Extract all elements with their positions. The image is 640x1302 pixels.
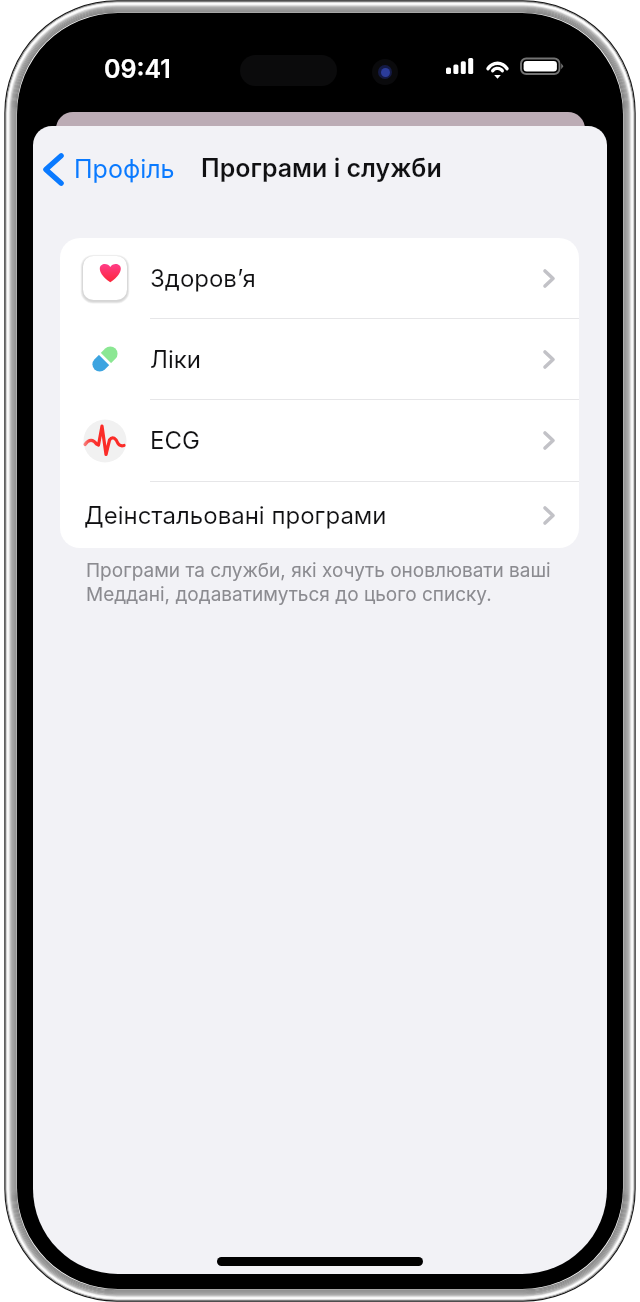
button[interactable]: ECG [60, 400, 579, 481]
staticText: Деінстальовані програми [84, 501, 387, 530]
staticText: ECG [150, 426, 200, 455]
staticText: Профіль [74, 154, 175, 184]
staticText: Програми і служби [201, 153, 442, 183]
staticText: Програми та служби, які хочуть оновлюват… [86, 559, 566, 605]
button[interactable]: Назад до Профіль [43, 143, 175, 195]
staticText: Здоров’я [150, 264, 256, 293]
button[interactable]: Здоров’я [60, 238, 579, 318]
staticText: Ліки [150, 345, 201, 374]
button[interactable]: Ліки [60, 319, 579, 399]
button[interactable]: Деінстальовані програми [60, 482, 579, 548]
staticText: 09:41 [104, 54, 171, 84]
